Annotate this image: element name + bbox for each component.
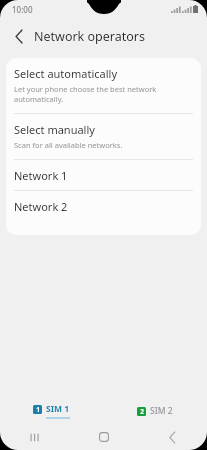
staticText: SIM 1 xyxy=(46,403,70,415)
staticText: Network 2 xyxy=(14,199,68,214)
staticText: Select manually xyxy=(14,122,95,137)
staticText: Let your phone choose the best network a… xyxy=(14,84,187,104)
button[interactable]: Network 2 xyxy=(6,191,201,221)
button[interactable]: Select manually xyxy=(6,114,201,159)
staticText: 2 xyxy=(140,407,144,416)
staticText: 10:00 xyxy=(12,4,33,15)
button[interactable]: Network 1 xyxy=(6,160,201,190)
staticText: Network 1 xyxy=(14,168,68,183)
staticText: SIM 2 xyxy=(150,405,173,417)
button[interactable]: Select automatically xyxy=(6,58,201,113)
button[interactable]: Recents xyxy=(0,424,69,450)
button[interactable]: Back xyxy=(8,25,30,47)
staticText: 1 xyxy=(36,405,40,414)
button[interactable]: Back xyxy=(138,424,207,450)
staticText: Scan for all available networks. xyxy=(14,140,123,150)
staticText: Select automatically xyxy=(14,66,117,81)
button[interactable]: 1 xyxy=(0,403,103,419)
button[interactable]: Home xyxy=(69,424,138,450)
staticText: Network operators xyxy=(34,28,145,45)
button[interactable]: 2 xyxy=(103,405,207,417)
